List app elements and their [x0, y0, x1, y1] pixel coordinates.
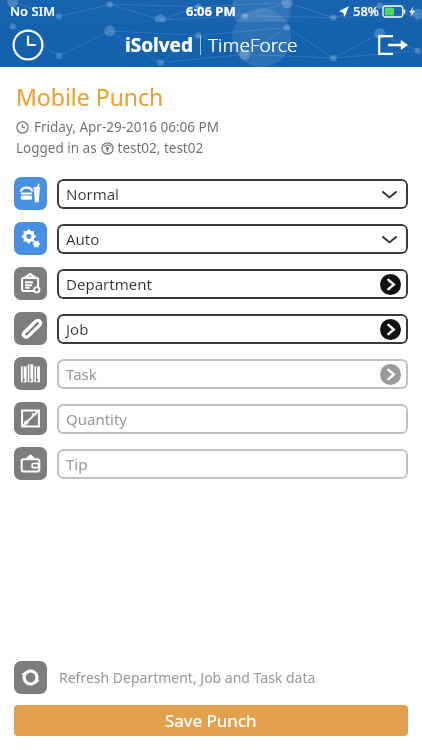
staticText: Normal — [66, 184, 119, 204]
staticText: Tip — [66, 454, 88, 474]
button[interactable]: Quantity — [14, 402, 47, 435]
button[interactable]: Log out — [378, 32, 408, 58]
button[interactable]: Tip — [57, 449, 408, 479]
staticText: Save Punch — [165, 709, 257, 732]
button[interactable]: Job — [57, 314, 408, 344]
button[interactable]: Time clock — [12, 29, 44, 61]
button[interactable]: Refresh Department, Job and Task data — [14, 657, 408, 697]
button[interactable]: Department — [57, 269, 408, 299]
staticText: Job — [66, 319, 89, 339]
button[interactable]: Job — [14, 312, 47, 345]
staticText: Quantity — [66, 409, 128, 429]
staticText: No SIM — [10, 2, 56, 20]
staticText: Task — [66, 364, 97, 384]
button[interactable]: Mode — [14, 222, 47, 255]
staticText: test02, test02 — [114, 139, 204, 157]
button[interactable]: Tip — [14, 447, 47, 480]
button[interactable]: Task — [14, 357, 47, 390]
staticText: 58% — [353, 2, 379, 20]
button[interactable]: Save Punch — [14, 705, 408, 736]
button[interactable]: Task — [57, 359, 408, 389]
staticText: Refresh Department, Job and Task data — [59, 668, 316, 687]
staticText: iSolved — [125, 32, 193, 58]
button[interactable]: Quantity — [57, 404, 408, 434]
staticText: Department — [66, 274, 152, 294]
button[interactable]: Punch type — [14, 177, 47, 210]
staticText: Friday, Apr-29-2016 06:06 PM — [34, 118, 219, 136]
button[interactable]: Department — [14, 267, 47, 300]
staticText: Logged in as — [16, 139, 101, 157]
staticText: Mobile Punch — [16, 81, 164, 112]
staticText: TimeForce — [208, 32, 298, 58]
button[interactable]: Auto — [57, 224, 408, 254]
button[interactable]: Normal — [57, 179, 408, 209]
staticText: Auto — [66, 229, 100, 249]
staticText: 6:06 PM — [186, 2, 236, 20]
